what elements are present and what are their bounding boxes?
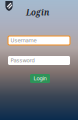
staticText: Login (26, 7, 49, 18)
staticText: Username (10, 37, 36, 44)
staticText: Login (33, 75, 46, 82)
button[interactable]: Login (30, 74, 50, 83)
staticText: Password (10, 57, 34, 64)
